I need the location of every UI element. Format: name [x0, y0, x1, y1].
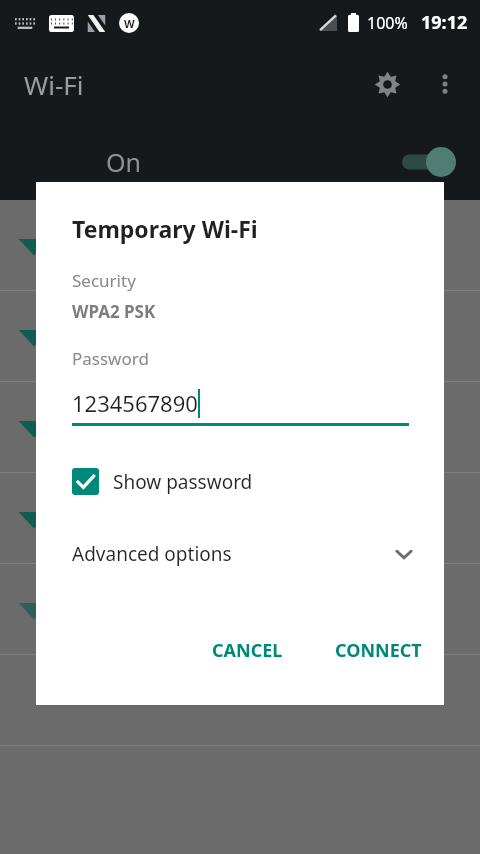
button[interactable]	[0, 655, 480, 746]
staticText: Show password	[113, 469, 253, 495]
button[interactable]	[0, 200, 480, 291]
button[interactable]	[0, 382, 480, 473]
button[interactable]	[0, 473, 480, 564]
staticText: CANCEL	[212, 638, 283, 663]
staticText: CONNECT	[335, 638, 422, 663]
button[interactable]: More options	[422, 61, 468, 107]
staticText: On	[106, 145, 141, 179]
button[interactable]: Wi-Fi settings	[364, 61, 410, 107]
staticText: 19:12	[421, 10, 468, 35]
staticText: Wi-Fi	[24, 67, 84, 102]
button[interactable]: On	[0, 123, 480, 200]
staticText: 100%	[367, 12, 408, 34]
button[interactable]: 1234567890	[72, 380, 409, 426]
staticText: Password	[72, 347, 149, 370]
button[interactable]: CANCEL	[196, 628, 299, 673]
staticText: WPA2 PSK	[72, 300, 156, 323]
staticText: Temporary Wi-Fi	[72, 213, 258, 244]
button[interactable]	[0, 564, 480, 655]
staticText: Security	[72, 269, 136, 292]
button[interactable]	[0, 291, 480, 382]
button[interactable]: Show password	[36, 462, 444, 501]
staticText: 1234567890	[72, 388, 198, 418]
button[interactable]: Advanced options	[36, 535, 444, 573]
staticText: Advanced options	[72, 541, 232, 567]
button[interactable]: CONNECT	[319, 628, 438, 673]
staticText: W	[124, 16, 135, 31]
